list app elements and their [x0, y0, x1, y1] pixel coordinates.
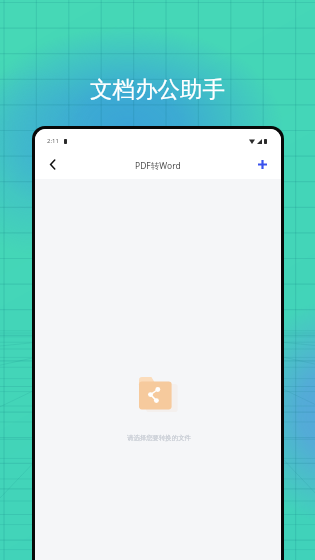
staticText: 请选择您要转换的文件 — [127, 434, 191, 442]
staticText: 文档办公助手 — [0, 75, 315, 103]
staticText: PDF转Word — [135, 160, 181, 172]
staticText: 2:11 — [47, 137, 59, 145]
button[interactable]: Choose file — [139, 377, 176, 410]
button[interactable]: Back — [38, 151, 66, 177]
button[interactable]: Add — [248, 151, 276, 177]
